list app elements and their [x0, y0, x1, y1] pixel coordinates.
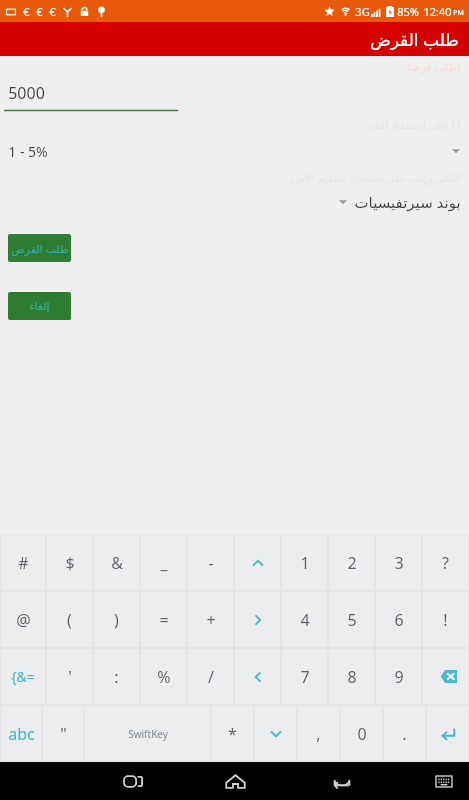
staticText: ' [68, 666, 72, 688]
staticText: $ [65, 552, 75, 574]
button[interactable]: 2 [329, 535, 374, 590]
button[interactable] [235, 649, 280, 704]
staticText: 2 [347, 552, 357, 574]
button[interactable] [235, 592, 280, 647]
button[interactable]: , [298, 706, 339, 761]
button[interactable]: abc [1, 706, 41, 761]
button[interactable]: * [212, 706, 253, 761]
button[interactable]: 1 - 5% [0, 136, 469, 166]
staticText: . [402, 723, 407, 745]
button[interactable]: 6 [376, 592, 421, 647]
staticText: بوند سيرتفيسيات [354, 192, 461, 212]
staticText: 1 - 5% [8, 142, 48, 161]
staticText: 8 [347, 666, 357, 688]
staticText: = [159, 609, 169, 631]
staticText: 9 [394, 666, 404, 688]
staticText: " [60, 723, 67, 745]
staticText: # [18, 552, 29, 574]
button[interactable]: _ [141, 535, 186, 590]
button[interactable]: 8 [329, 649, 374, 704]
staticText: / [208, 666, 214, 688]
staticText: 3 [394, 552, 404, 574]
staticText: إلغاء [29, 300, 50, 313]
staticText: 4 [300, 609, 310, 631]
button[interactable]: = [141, 592, 186, 647]
staticText: SwiftKey [128, 727, 168, 741]
button[interactable]: " [43, 706, 83, 761]
staticText: abc [8, 723, 35, 745]
button[interactable]: 3 [376, 535, 421, 590]
button[interactable]: إلغاء [8, 292, 71, 320]
staticText: : [114, 666, 119, 688]
staticText: 6 [394, 609, 404, 631]
button[interactable]: 5 [329, 592, 374, 647]
staticText: ? [442, 552, 449, 574]
button[interactable]: ( [47, 592, 92, 647]
button[interactable]: 0 [341, 706, 382, 761]
button[interactable]: + [188, 592, 233, 647]
button[interactable]: Home [212, 762, 258, 800]
staticText: ) [114, 609, 119, 631]
staticText: طلب القرض [11, 241, 69, 256]
button[interactable]: : [94, 649, 139, 704]
button[interactable]: - [188, 535, 233, 590]
staticText: 12:40 [423, 4, 452, 19]
button[interactable] [235, 535, 280, 590]
staticText: % [157, 666, 171, 688]
button[interactable]: Backspace [423, 649, 468, 704]
button[interactable]: ! [423, 592, 468, 647]
staticText: 1 [300, 552, 310, 574]
staticText: & [111, 552, 123, 574]
button[interactable]: % [141, 649, 186, 704]
button[interactable]: ' [47, 649, 92, 704]
button[interactable]: {&= [1, 649, 45, 704]
staticText: , [316, 723, 321, 745]
button[interactable]: @ [1, 592, 45, 647]
button[interactable]: Switch keyboard [429, 762, 459, 800]
button[interactable] [255, 706, 296, 761]
staticText: ! [443, 609, 448, 631]
staticText: طلب القرض [370, 28, 459, 51]
staticText: 5000 [8, 82, 45, 104]
button[interactable]: & [94, 535, 139, 590]
button[interactable]: 7 [282, 649, 327, 704]
staticText: € [49, 4, 56, 19]
staticText: اطلب قرضا [407, 59, 461, 74]
button[interactable]: . [384, 706, 425, 761]
button[interactable]: $ [47, 535, 92, 590]
staticText: @ [16, 609, 31, 631]
staticText: + [206, 609, 216, 631]
staticText: € [23, 4, 30, 19]
staticText: 0 [357, 723, 367, 745]
staticText: 85% [397, 4, 419, 19]
button[interactable]: بوند سيرتفيسيات [0, 188, 469, 216]
staticText: 7 [300, 666, 310, 688]
button[interactable]: Enter [427, 706, 468, 761]
staticText: - [208, 552, 214, 574]
staticText: _ [160, 552, 168, 574]
staticText: ( [67, 609, 72, 631]
button[interactable]: ) [94, 592, 139, 647]
button[interactable]: # [1, 535, 45, 590]
staticText: {&= [11, 667, 35, 686]
staticText: PM [453, 8, 464, 18]
staticText: * [228, 723, 237, 745]
button[interactable]: Recents [110, 762, 156, 800]
staticText: 5 [347, 609, 357, 631]
button[interactable]: 4 [282, 592, 327, 647]
button[interactable]: 1 [282, 535, 327, 590]
button[interactable]: ? [423, 535, 468, 590]
staticText: 3G [355, 4, 370, 19]
button[interactable]: Back [318, 762, 364, 800]
staticText: € [36, 4, 43, 19]
button[interactable]: SwiftKey [85, 706, 210, 761]
button[interactable]: 9 [376, 649, 421, 704]
button[interactable]: / [188, 649, 233, 704]
button[interactable]: طلب القرض [8, 234, 71, 262]
